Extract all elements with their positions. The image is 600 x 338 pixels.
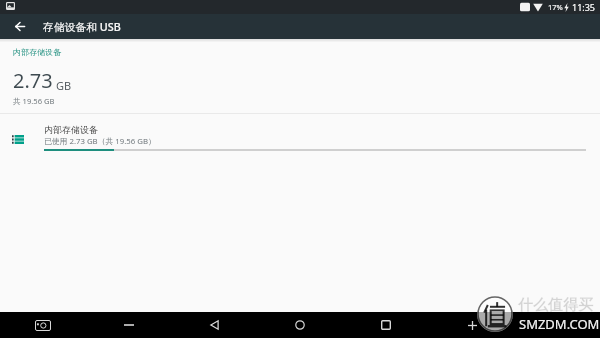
staticText: 已使用 2.73 GB（共 19.56 GB） bbox=[44, 136, 156, 147]
button[interactable]: 内部存储设备 bbox=[0, 114, 600, 160]
button[interactable]: Home bbox=[290, 315, 310, 335]
staticText: 什么值得买 bbox=[518, 296, 593, 315]
staticText: 2.73 bbox=[13, 67, 53, 94]
staticText: SMZDM.COM bbox=[519, 315, 600, 333]
button[interactable]: Minimize bbox=[119, 315, 139, 335]
button[interactable]: Screenshot bbox=[31, 315, 55, 335]
button[interactable]: Back bbox=[0, 14, 40, 39]
staticText: 内部存储设备 bbox=[13, 47, 61, 57]
button[interactable]: Recents bbox=[376, 315, 396, 335]
button[interactable]: Back bbox=[204, 315, 224, 335]
button[interactable]: Add bbox=[462, 315, 482, 335]
staticText: 17% bbox=[548, 2, 563, 12]
staticText: 存储设备和 USB bbox=[43, 19, 121, 34]
staticText: 11:35 bbox=[572, 1, 596, 13]
staticText: GB bbox=[56, 78, 72, 93]
staticText: 共 19.56 GB bbox=[13, 96, 55, 106]
staticText: 内部存储设备 bbox=[44, 124, 98, 135]
